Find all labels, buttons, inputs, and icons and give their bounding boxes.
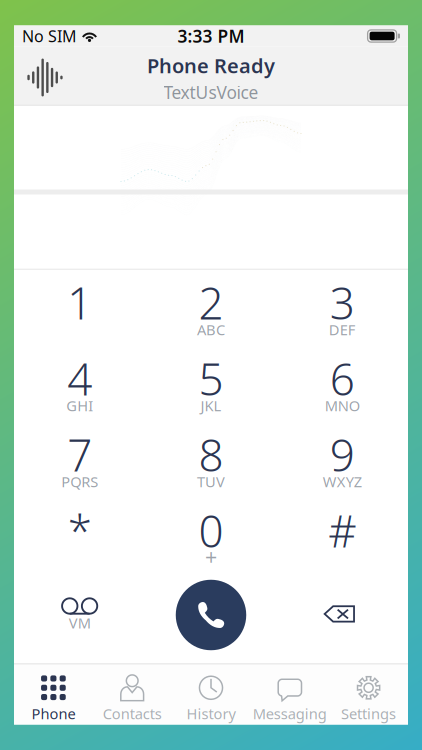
button[interactable]: Phone	[14, 663, 93, 724]
staticText: 8	[198, 425, 223, 484]
staticText: Contacts	[103, 704, 162, 723]
staticText: #	[328, 501, 356, 560]
button[interactable]: 9	[277, 421, 408, 497]
button[interactable]: 5	[145, 345, 277, 421]
button[interactable]: 7	[14, 421, 145, 497]
button[interactable]: #	[277, 497, 408, 573]
button[interactable]: 3	[277, 269, 408, 345]
staticText: 7	[67, 425, 92, 484]
button[interactable]: Voicemail	[14, 573, 145, 659]
button[interactable]: Voice	[21, 50, 69, 102]
staticText: 3	[330, 273, 355, 332]
button[interactable]: 8	[145, 421, 277, 497]
staticText: Phone	[31, 704, 75, 723]
staticText: Phone Ready	[147, 52, 275, 79]
staticText: JKL	[200, 396, 221, 415]
staticText: 6	[330, 349, 355, 408]
staticText: *	[68, 501, 92, 560]
staticText: 4	[67, 349, 92, 408]
button[interactable]: 1	[14, 269, 145, 345]
staticText: MNO	[325, 396, 360, 415]
staticText: 0	[198, 501, 223, 560]
staticText: DEF	[329, 320, 356, 339]
staticText: 1	[67, 273, 92, 332]
button[interactable]: 0	[145, 497, 277, 573]
button[interactable]: 6	[277, 345, 408, 421]
button[interactable]: *	[14, 497, 145, 573]
staticText: ABC	[197, 320, 225, 339]
staticText: 5	[198, 349, 223, 408]
staticText: 3:33 PM	[177, 24, 244, 47]
button[interactable]: 2	[145, 269, 277, 345]
button[interactable]: 4	[14, 345, 145, 421]
button[interactable]: Delete	[277, 573, 408, 659]
staticText: GHI	[66, 396, 93, 415]
staticText: PQRS	[61, 472, 98, 491]
staticText: VM	[69, 613, 91, 633]
button[interactable]: Contacts	[93, 663, 172, 724]
button[interactable]: History	[172, 663, 250, 724]
staticText: TextUsVoice	[163, 81, 258, 104]
staticText: Messaging	[253, 704, 327, 723]
staticText: Settings	[341, 704, 396, 723]
staticText: TUV	[197, 472, 225, 491]
button[interactable]: Settings	[329, 663, 408, 724]
button[interactable]: Call	[145, 573, 277, 659]
staticText: 2	[198, 273, 223, 332]
staticText: No SIM	[22, 25, 77, 47]
staticText: 9	[330, 425, 355, 484]
staticText: WXYZ	[323, 472, 362, 491]
staticText: +	[205, 542, 217, 571]
button[interactable]: Messaging	[250, 663, 329, 724]
staticText: History	[186, 704, 235, 723]
